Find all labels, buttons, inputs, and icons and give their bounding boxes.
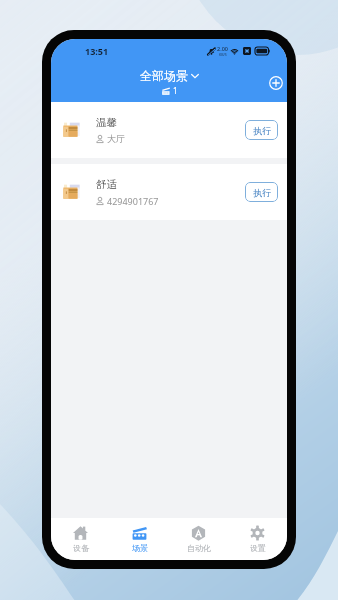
staticText: 13:51 — [85, 45, 109, 57]
staticText: 场景 — [132, 543, 148, 553]
staticText: 舒适 — [96, 178, 117, 191]
button[interactable]: 温馨 — [51, 102, 287, 158]
button[interactable]: 执行 — [245, 120, 278, 140]
staticText: 全部场景 — [140, 68, 188, 83]
button[interactable]: 场景 — [110, 518, 169, 560]
staticText: KB/S — [219, 52, 227, 57]
button[interactable]: 设置 — [228, 518, 287, 560]
staticText: 2.00 — [217, 45, 228, 52]
staticText: 4294901767 — [107, 195, 159, 207]
button[interactable]: Add scene — [269, 76, 283, 90]
staticText: 1 — [173, 85, 178, 96]
button[interactable]: 舒适 — [51, 164, 287, 220]
staticText: 设置 — [250, 543, 266, 553]
staticText: 执行 — [253, 125, 271, 136]
staticText: 设备 — [73, 543, 89, 553]
button[interactable]: 自动化 — [169, 518, 228, 560]
staticText: 执行 — [253, 187, 271, 198]
button[interactable]: 执行 — [245, 182, 278, 202]
staticText: 自动化 — [187, 543, 211, 553]
button[interactable]: 全部场景 — [140, 68, 199, 96]
button[interactable]: 设备 — [51, 518, 110, 560]
staticText: 温馨 — [96, 116, 117, 129]
staticText: 大厅 — [107, 133, 125, 144]
